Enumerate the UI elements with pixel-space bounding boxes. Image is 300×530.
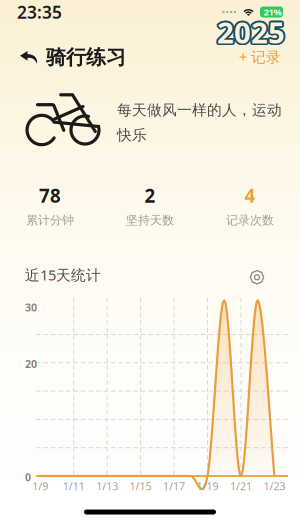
staticText: 累计分钟 [26, 213, 74, 227]
staticText: 1/15 [130, 479, 152, 493]
staticText: 2025 [218, 11, 286, 50]
staticText: 4 [244, 183, 255, 208]
staticText: 2025 [216, 11, 284, 50]
staticText: 2025 [217, 14, 285, 53]
staticText: 1/13 [96, 479, 118, 493]
button[interactable]: 2025 [221, 0, 300, 66]
staticText: 2025 [216, 11, 284, 50]
staticText: 1/23 [263, 479, 285, 493]
staticText: 近15天统计 [25, 265, 101, 284]
staticText: 2025 [215, 12, 283, 51]
staticText: 快乐 [117, 126, 147, 144]
staticText: 1/17 [163, 479, 185, 493]
staticText: 1/19 [196, 479, 218, 493]
staticText: 2025 [218, 14, 286, 53]
staticText: 1/9 [32, 479, 48, 493]
staticText: 2025 [219, 13, 287, 52]
staticText: 骑行练习 [46, 45, 126, 70]
staticText: 2025 [219, 12, 287, 51]
staticText: 2025 [217, 11, 285, 50]
staticText: 2025 [219, 12, 287, 51]
staticText: 2025 [216, 14, 284, 53]
button[interactable]: 骑行练习 [0, 0, 126, 70]
staticText: 30 [25, 300, 37, 314]
staticText: 2025 [217, 12, 285, 51]
staticText: 21% [263, 6, 281, 18]
staticText: 20 [25, 357, 37, 371]
staticText: 2025 [215, 13, 283, 52]
staticText: 2025 [218, 11, 286, 50]
staticText: 1/21 [230, 479, 252, 493]
staticText: 2025 [215, 12, 283, 51]
staticText: 每天做风一样的人，运动 [117, 101, 282, 119]
staticText: 2025 [216, 14, 284, 53]
staticText: 坚持天数 [126, 213, 174, 227]
staticText: 0 [25, 470, 31, 484]
staticText: 23:35 [17, 0, 62, 23]
button[interactable]: Settings [250, 265, 300, 284]
staticText: 记录次数 [226, 213, 274, 227]
staticText: + 记录 [239, 47, 281, 66]
staticText: 78 [39, 183, 61, 208]
staticText: 1/11 [63, 479, 85, 493]
staticText: 2 [144, 183, 155, 208]
staticText: 2025 [218, 14, 286, 53]
